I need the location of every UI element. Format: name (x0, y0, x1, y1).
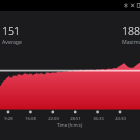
staticText: 22:00 (48, 116, 59, 122)
staticText: 36:35 (93, 116, 104, 122)
staticText: 16:08 (25, 116, 36, 122)
staticText: 9:28 (4, 116, 13, 122)
staticText: 43:30 (115, 116, 126, 122)
staticText: 188 (122, 24, 140, 38)
staticText: 28:51 (70, 116, 81, 122)
other: Status icons (0, 0, 140, 140)
staticText: Time (h:m:s) (57, 122, 83, 128)
staticText: Maximum (122, 38, 140, 45)
staticText: Average (2, 38, 22, 45)
staticText: 151 (2, 24, 21, 38)
